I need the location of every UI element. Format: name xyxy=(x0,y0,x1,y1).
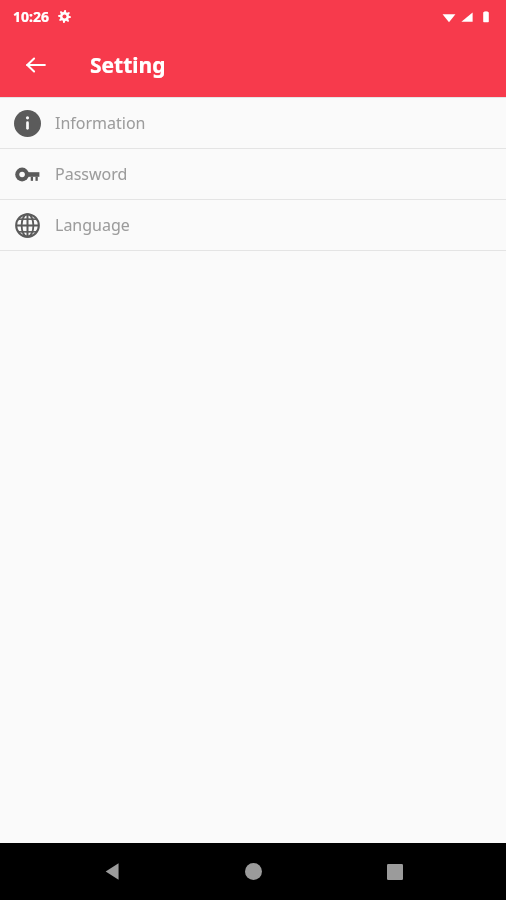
button[interactable]: Home xyxy=(223,843,283,900)
button[interactable]: Password xyxy=(0,149,506,199)
button[interactable]: Recent apps xyxy=(365,843,425,900)
staticText: 10:26 xyxy=(13,7,49,26)
button[interactable]: Language xyxy=(0,200,506,250)
button[interactable]: Information xyxy=(0,98,506,148)
button[interactable]: Back xyxy=(82,843,142,900)
button[interactable]: Back xyxy=(12,41,60,89)
staticText: Password xyxy=(55,163,128,185)
staticText: Information xyxy=(55,112,146,134)
staticText: Setting xyxy=(90,51,166,80)
staticText: Language xyxy=(55,214,130,236)
